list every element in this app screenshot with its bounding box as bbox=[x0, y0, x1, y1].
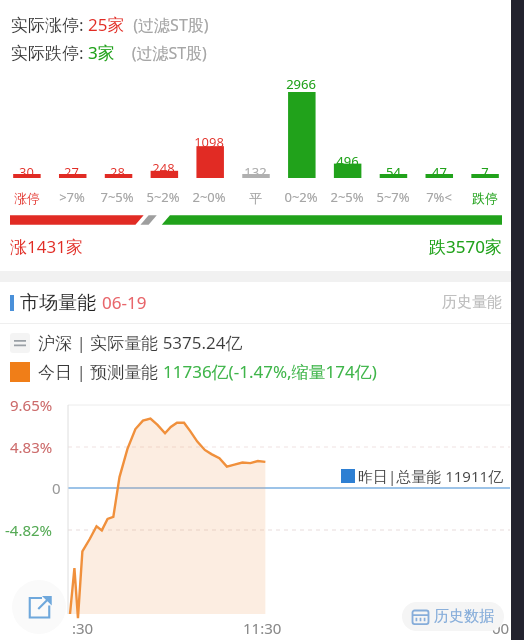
staticText: 今日 | 预测量能 bbox=[38, 360, 163, 383]
staticText: 7~5% bbox=[100, 188, 134, 206]
staticText: 5~7% bbox=[376, 188, 410, 206]
staticText: 00 bbox=[492, 618, 510, 638]
staticText: 沪深 | 实际量能 5375.24亿 bbox=[38, 331, 243, 354]
staticText: :30 bbox=[72, 618, 94, 638]
staticText: 历史量能 bbox=[442, 293, 502, 312]
staticText: 7%< bbox=[426, 188, 452, 206]
button[interactable]: 市场量能 bbox=[10, 282, 502, 323]
staticText: 11:30 bbox=[243, 618, 282, 638]
staticText: 2966 bbox=[286, 75, 316, 93]
staticText: 248 bbox=[152, 159, 175, 177]
staticText: 11736亿(-1.47%,缩量174亿) bbox=[163, 360, 377, 383]
staticText: 市场量能 bbox=[20, 291, 96, 315]
staticText: 9.65% bbox=[10, 395, 53, 415]
staticText: 3家 bbox=[88, 41, 115, 64]
staticText: 实际跌停: bbox=[11, 41, 88, 64]
staticText: 跌3570家 bbox=[429, 235, 502, 258]
staticText: (过滤ST股) bbox=[115, 42, 207, 64]
button[interactable]: 分享 bbox=[12, 580, 66, 634]
staticText: 1098 bbox=[194, 133, 224, 151]
staticText: 28 bbox=[110, 163, 125, 181]
staticText: -4.82% bbox=[5, 520, 53, 540]
staticText: 47 bbox=[432, 163, 447, 181]
staticText: 涨1431家 bbox=[10, 235, 83, 258]
staticText: 昨日|总量能 11911亿 bbox=[358, 466, 504, 486]
staticText: 30 bbox=[19, 163, 34, 181]
staticText: 496 bbox=[336, 152, 359, 170]
staticText: 27 bbox=[64, 163, 79, 181]
staticText: >7% bbox=[59, 188, 85, 206]
staticText: 4.83% bbox=[10, 437, 53, 457]
staticText: 实际涨停: bbox=[11, 13, 88, 36]
staticText: 历史数据 bbox=[434, 607, 494, 626]
staticText: 06-19 bbox=[102, 291, 147, 314]
staticText: 132 bbox=[244, 163, 267, 181]
staticText: 7 bbox=[481, 163, 489, 181]
button[interactable]: 历史数据 bbox=[412, 607, 494, 626]
staticText: 跌停 bbox=[472, 190, 498, 206]
staticText: 平 bbox=[249, 190, 262, 206]
staticText: 2~5% bbox=[330, 188, 364, 206]
staticText: 25家 bbox=[88, 13, 125, 36]
staticText: 5~2% bbox=[146, 188, 180, 206]
staticText: 0~2% bbox=[284, 188, 318, 206]
staticText: 涨停 bbox=[14, 190, 40, 206]
staticText: (过滤ST股) bbox=[125, 14, 209, 36]
staticText: 0 bbox=[52, 478, 61, 498]
staticText: 2~0% bbox=[192, 188, 226, 206]
staticText: 54 bbox=[386, 163, 401, 181]
